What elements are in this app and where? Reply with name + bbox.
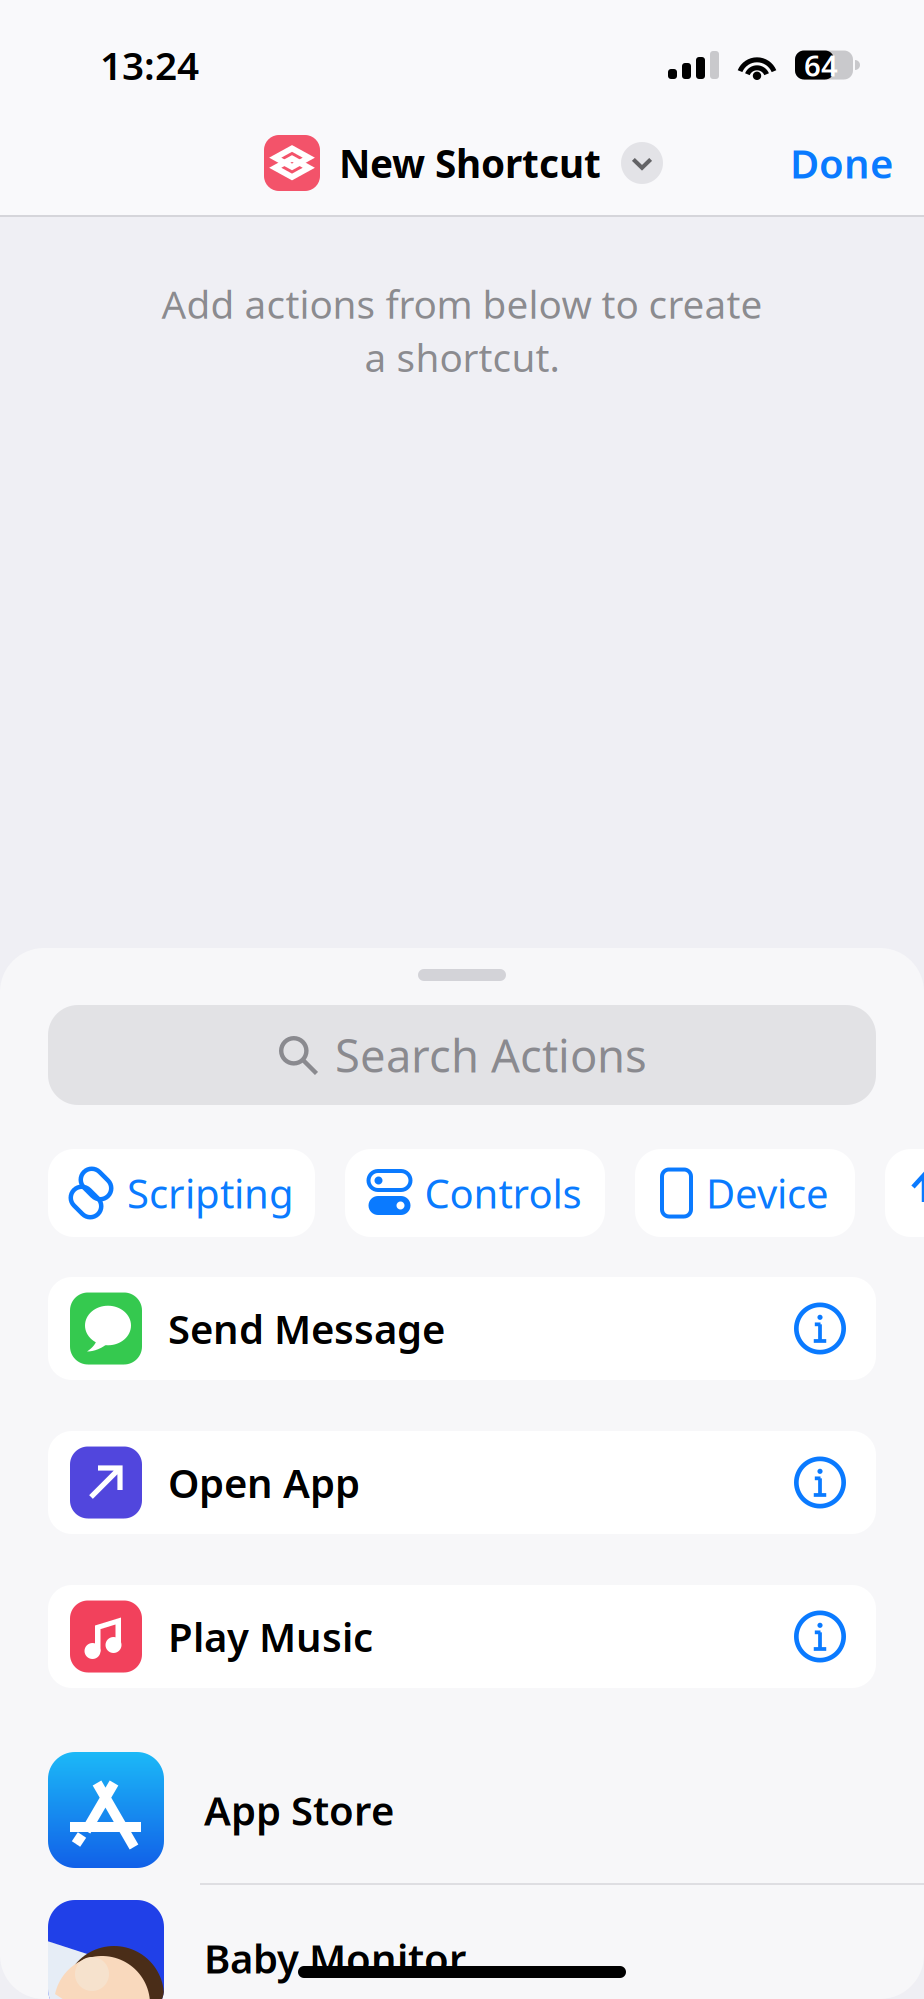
button[interactable]: App Store xyxy=(0,1737,924,1883)
staticText: Done xyxy=(790,136,893,189)
staticText: 13:24 xyxy=(100,39,199,91)
staticText: Add actions from below to create xyxy=(161,278,762,329)
staticText: Send Message xyxy=(168,1302,445,1355)
staticText: 64 xyxy=(804,45,838,84)
button[interactable]: Baby Monitor xyxy=(0,1885,924,1999)
staticText: a shortcut. xyxy=(364,331,559,383)
button[interactable]: New Shortcut xyxy=(264,133,663,193)
staticText: Open App xyxy=(168,1456,360,1509)
button[interactable]: Share xyxy=(885,1149,924,1237)
button[interactable]: Play Music xyxy=(48,1585,876,1688)
staticText: New Shortcut xyxy=(339,137,601,189)
staticText: Play Music xyxy=(168,1610,373,1663)
button[interactable]: Done xyxy=(774,133,909,193)
button[interactable]: Device xyxy=(635,1149,855,1237)
button[interactable]: Send Message xyxy=(48,1277,876,1380)
button[interactable]: Scripting xyxy=(48,1149,315,1237)
button[interactable]: Open App xyxy=(48,1431,876,1534)
staticText: Device xyxy=(706,1166,829,1219)
staticText: Controls xyxy=(424,1166,581,1219)
staticText: Baby Monitor xyxy=(204,1931,466,1984)
button[interactable]: Controls xyxy=(345,1149,605,1237)
staticText: App Store xyxy=(204,1783,394,1836)
staticText: Scripting xyxy=(127,1166,294,1219)
staticText: Search Actions xyxy=(335,1025,647,1085)
